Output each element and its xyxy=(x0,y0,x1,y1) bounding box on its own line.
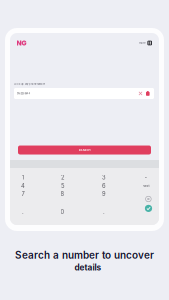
staticText: Search a number to uncover xyxy=(15,249,154,261)
button[interactable]: 5 xyxy=(54,182,70,190)
button[interactable]: 0 xyxy=(54,208,70,216)
button[interactable]: Delete xyxy=(146,196,151,202)
staticText: 7 xyxy=(21,190,24,197)
staticText: 2 xyxy=(61,174,64,181)
button[interactable]: 3 xyxy=(96,173,112,181)
staticText: Look up any phone number xyxy=(14,82,45,86)
staticText: 9 xyxy=(102,190,106,197)
staticText: details xyxy=(74,262,101,272)
staticText: more xyxy=(139,41,146,45)
staticText: SEARCH xyxy=(78,148,90,152)
staticText: . xyxy=(103,208,105,215)
button[interactable]: 8 xyxy=(54,190,70,198)
button[interactable]: . xyxy=(15,208,31,216)
button[interactable]: 7 xyxy=(15,190,31,198)
staticText: 215-222-3344 xyxy=(17,92,31,95)
staticText: 6 xyxy=(102,182,106,189)
button[interactable]: Paste xyxy=(145,91,150,96)
button[interactable]: 1 xyxy=(15,173,31,181)
button[interactable]: Clear xyxy=(138,91,142,96)
button[interactable]: 2 xyxy=(54,173,70,181)
staticText: NG xyxy=(16,39,26,47)
staticText: 5 xyxy=(61,182,64,189)
button[interactable]: 9 xyxy=(96,190,112,198)
staticText: 1 xyxy=(22,174,24,181)
staticText: - xyxy=(144,174,147,181)
staticText: next xyxy=(142,184,149,188)
button[interactable]: 4 xyxy=(15,182,31,190)
button[interactable]: 6 xyxy=(96,182,112,190)
staticText: . xyxy=(22,208,24,215)
staticText: 4 xyxy=(21,182,25,189)
button[interactable]: next xyxy=(138,182,154,190)
button[interactable]: - xyxy=(138,173,154,181)
staticText: 0 xyxy=(60,208,64,215)
button[interactable]: More xyxy=(136,40,152,46)
button[interactable]: SEARCH xyxy=(18,145,151,154)
staticText: 8 xyxy=(60,190,64,197)
button[interactable]: Done xyxy=(145,205,152,212)
staticText: 3 xyxy=(102,174,106,181)
button[interactable]: . xyxy=(96,208,112,216)
